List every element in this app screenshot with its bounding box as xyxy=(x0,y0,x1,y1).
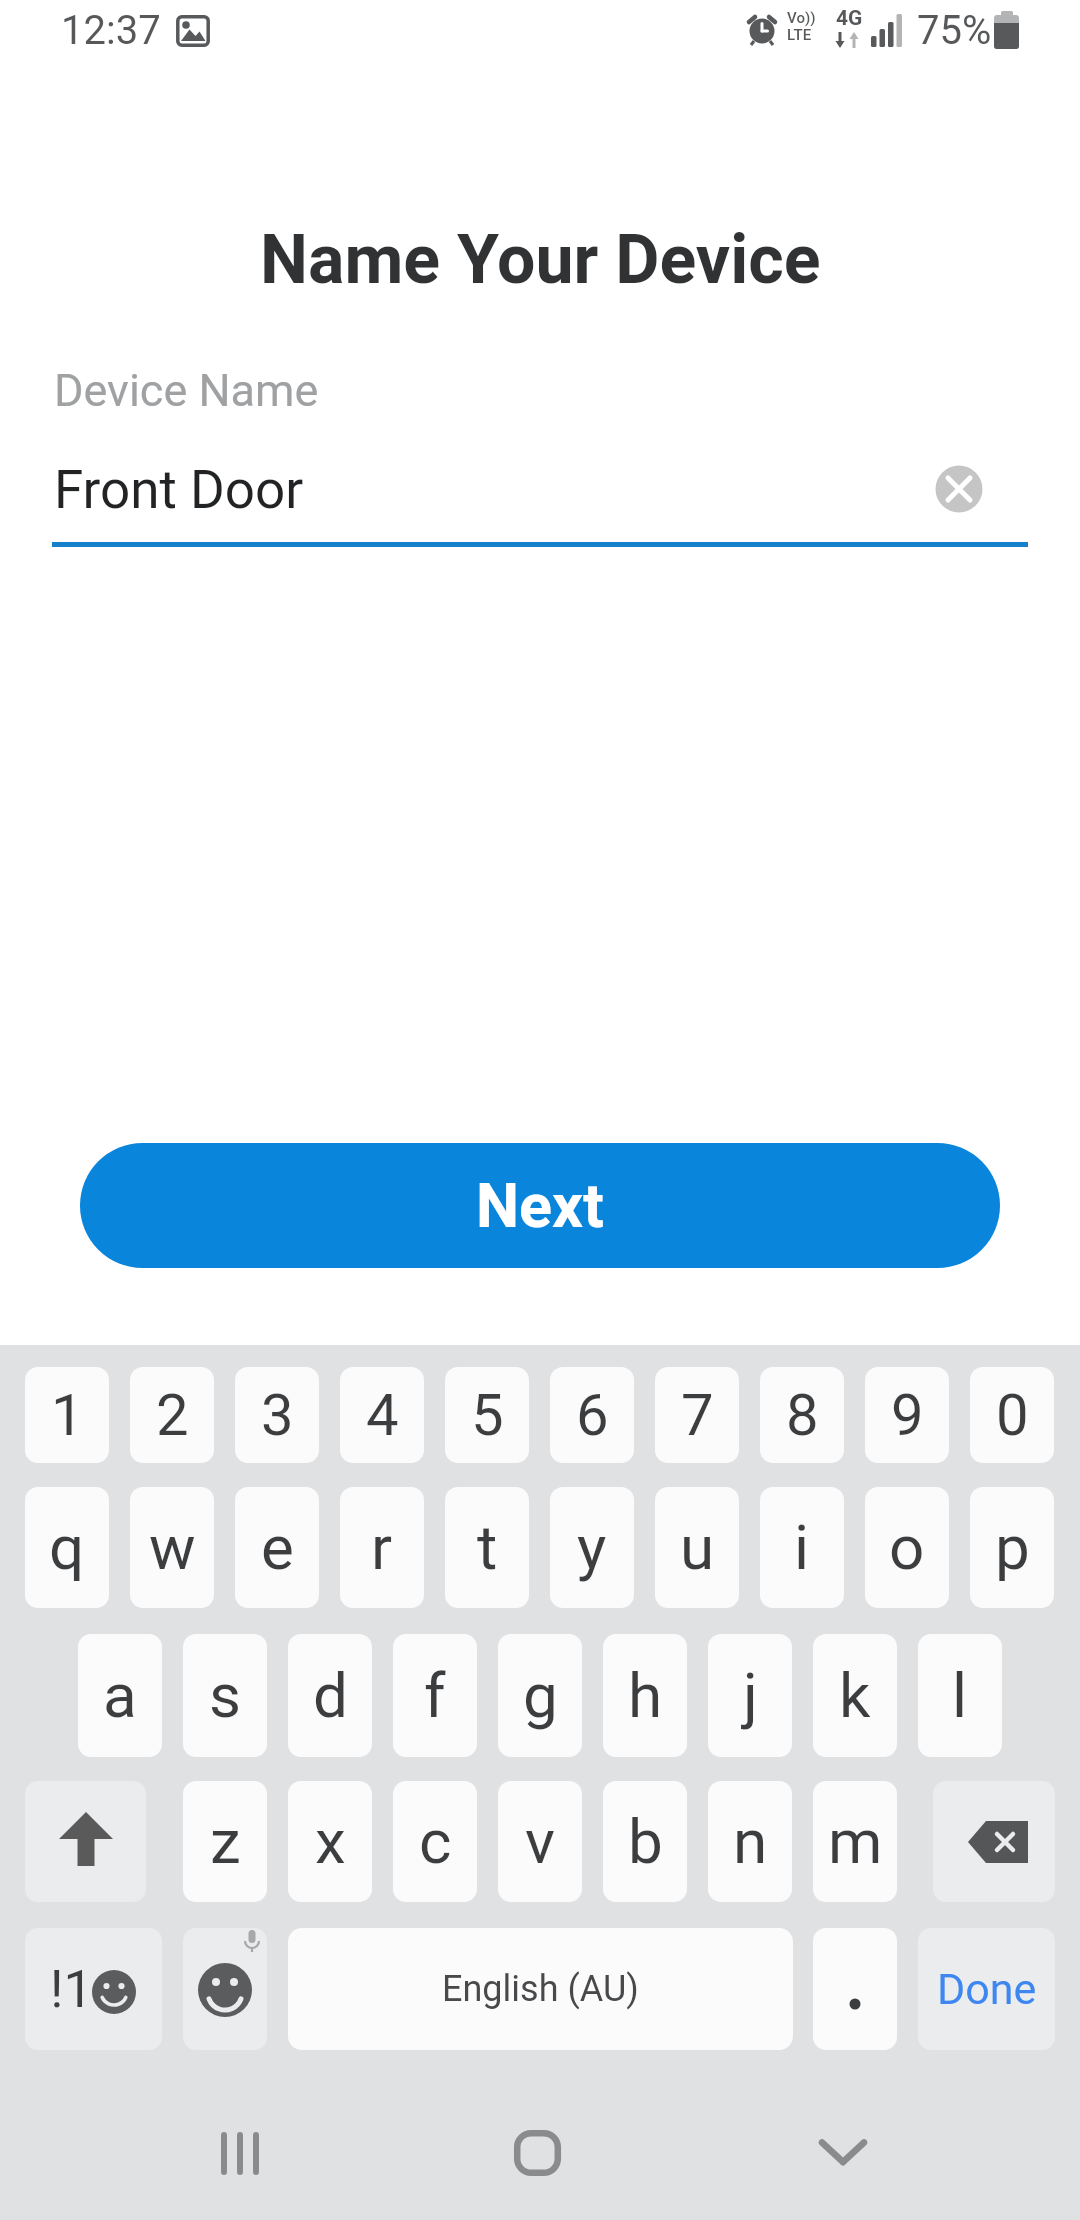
button[interactable]: 9 xyxy=(865,1367,949,1463)
staticText: 4G xyxy=(836,6,863,31)
staticText: i xyxy=(794,1511,810,1584)
staticText: 2 xyxy=(156,1381,189,1449)
button[interactable]: u xyxy=(655,1487,739,1608)
staticText: 3 xyxy=(261,1381,294,1449)
staticText: p xyxy=(995,1511,1030,1584)
button[interactable]: f xyxy=(393,1634,477,1757)
button[interactable]: 7 xyxy=(655,1367,739,1463)
button[interactable]: h xyxy=(603,1634,687,1757)
button[interactable] xyxy=(183,1928,267,2050)
button[interactable] xyxy=(498,2112,576,2194)
button[interactable]: r xyxy=(340,1487,424,1608)
staticText: k xyxy=(839,1659,871,1732)
button[interactable] xyxy=(813,1928,897,2050)
staticText: v xyxy=(525,1805,556,1878)
staticText: r xyxy=(371,1511,393,1584)
staticText: d xyxy=(313,1659,348,1732)
staticText: u xyxy=(680,1511,715,1584)
button[interactable]: w xyxy=(130,1487,214,1608)
staticText: 9 xyxy=(891,1381,924,1449)
staticText: j xyxy=(743,1659,758,1732)
button[interactable] xyxy=(804,2112,882,2194)
staticText: e xyxy=(261,1511,294,1584)
button[interactable]: t xyxy=(445,1487,529,1608)
button[interactable]: 1 xyxy=(25,1367,109,1463)
staticText: g xyxy=(523,1659,558,1732)
staticText: f xyxy=(424,1659,446,1732)
button[interactable]: 2 xyxy=(130,1367,214,1463)
button[interactable]: !1 xyxy=(25,1928,162,2050)
button[interactable] xyxy=(25,1781,146,1902)
staticText: b xyxy=(628,1805,663,1878)
staticText: English (AU) xyxy=(442,1968,639,2010)
staticText: l xyxy=(952,1659,968,1732)
button[interactable]: p xyxy=(970,1487,1054,1608)
button[interactable]: i xyxy=(760,1487,844,1608)
staticText: a xyxy=(103,1659,137,1732)
button[interactable]: Done xyxy=(918,1928,1055,2050)
staticText: 7 xyxy=(681,1381,714,1449)
staticText: 0 xyxy=(996,1381,1029,1449)
button[interactable]: English (AU) xyxy=(288,1928,793,2050)
staticText: LTE xyxy=(787,26,812,44)
button[interactable]: l xyxy=(918,1634,1002,1757)
staticText: 5 xyxy=(471,1381,504,1449)
staticText: 6 xyxy=(576,1381,609,1449)
button[interactable]: b xyxy=(603,1781,687,1902)
button[interactable]: v xyxy=(498,1781,582,1902)
button[interactable]: y xyxy=(550,1487,634,1608)
staticText: h xyxy=(628,1659,663,1732)
staticText: Done xyxy=(937,1964,1037,2014)
staticText: Name Your Device xyxy=(260,220,821,300)
staticText: x xyxy=(315,1805,346,1878)
button[interactable]: s xyxy=(183,1634,267,1757)
staticText: !1 xyxy=(50,1959,93,2020)
staticText: 1 xyxy=(51,1381,84,1449)
button[interactable]: 5 xyxy=(445,1367,529,1463)
staticText: m xyxy=(828,1805,883,1878)
staticText: 75% xyxy=(917,7,992,54)
button[interactable]: a xyxy=(78,1634,162,1757)
staticText: Vo)) xyxy=(787,9,816,27)
button[interactable]: 8 xyxy=(760,1367,844,1463)
staticText: 8 xyxy=(786,1381,819,1449)
staticText: z xyxy=(210,1805,241,1878)
staticText: 4 xyxy=(366,1381,399,1449)
staticText: w xyxy=(149,1511,196,1584)
staticText: q xyxy=(49,1511,85,1584)
staticText: Next xyxy=(476,1170,604,1241)
staticText: Device Name xyxy=(54,364,319,417)
button[interactable] xyxy=(933,463,985,515)
button[interactable]: k xyxy=(813,1634,897,1757)
button[interactable] xyxy=(201,2112,279,2194)
button[interactable] xyxy=(933,1781,1055,1902)
button[interactable]: o xyxy=(865,1487,949,1608)
button[interactable]: q xyxy=(25,1487,109,1608)
button[interactable]: e xyxy=(235,1487,319,1608)
button[interactable]: 3 xyxy=(235,1367,319,1463)
staticText: t xyxy=(477,1511,498,1584)
button[interactable]: Next xyxy=(80,1143,1000,1268)
button[interactable]: 0 xyxy=(970,1367,1054,1463)
staticText: c xyxy=(419,1805,452,1878)
button[interactable]: c xyxy=(393,1781,477,1902)
button[interactable]: j xyxy=(708,1634,792,1757)
button[interactable]: m xyxy=(813,1781,897,1902)
staticText: n xyxy=(733,1805,768,1878)
button[interactable]: x xyxy=(288,1781,372,1902)
button[interactable]: 6 xyxy=(550,1367,634,1463)
staticText: y xyxy=(577,1511,607,1584)
staticText: Front Door xyxy=(54,459,304,521)
button[interactable]: n xyxy=(708,1781,792,1902)
button[interactable]: g xyxy=(498,1634,582,1757)
button[interactable]: d xyxy=(288,1634,372,1757)
staticText: s xyxy=(209,1659,241,1732)
staticText: o xyxy=(889,1511,925,1584)
button[interactable]: 4 xyxy=(340,1367,424,1463)
staticText: 12:37 xyxy=(61,7,161,54)
button[interactable]: z xyxy=(183,1781,267,1902)
